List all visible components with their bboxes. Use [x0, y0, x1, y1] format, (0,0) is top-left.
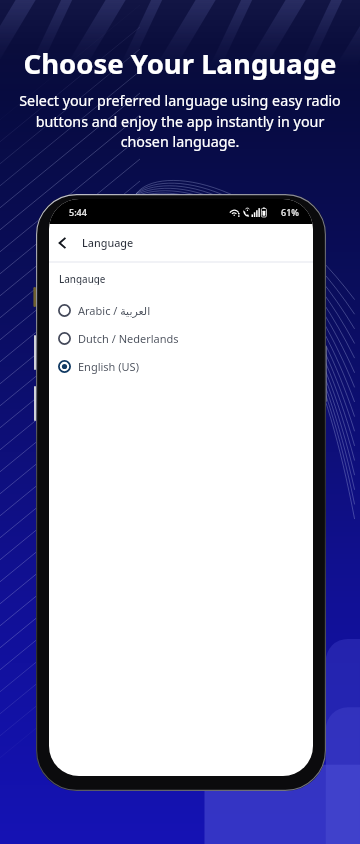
staticText: Arabic / العربية	[78, 303, 151, 318]
staticText: Language	[82, 235, 134, 250]
button[interactable]: Back	[51, 232, 73, 254]
staticText: 5:44	[69, 206, 87, 218]
staticText: Select your preferred language using eas…	[15, 91, 345, 151]
button[interactable]: English (US)	[49, 352, 313, 380]
button[interactable]: Dutch / Nederlands	[49, 324, 313, 352]
staticText: Langauge	[59, 273, 106, 285]
button[interactable]: Arabic / العربية	[49, 296, 313, 324]
staticText: Dutch / Nederlands	[78, 331, 179, 346]
staticText: Choose Your Language	[0, 45, 360, 82]
staticText: English (US)	[78, 359, 139, 374]
staticText: 61%	[281, 206, 299, 218]
